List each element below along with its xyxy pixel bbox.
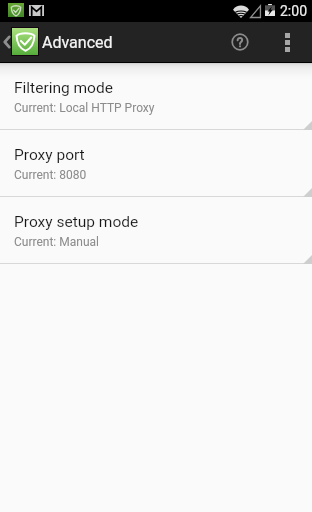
staticText: 2:00 — [280, 3, 307, 19]
button[interactable]: Help — [216, 22, 263, 62]
button[interactable]: Filtering mode — [0, 63, 312, 130]
staticText: Current: Manual — [14, 235, 99, 249]
staticText: Proxy setup mode — [14, 213, 139, 231]
staticText: Filtering mode — [14, 79, 113, 97]
button[interactable]: More options — [263, 22, 312, 62]
button[interactable]: Proxy port — [0, 130, 312, 197]
staticText: Advanced — [42, 33, 113, 52]
staticText: Current: Local HTTP Proxy — [14, 101, 155, 115]
staticText: Current: 8080 — [14, 168, 87, 182]
staticText: Proxy port — [14, 146, 85, 164]
button[interactable]: Navigate up, Advanced — [0, 22, 312, 62]
button[interactable]: Proxy setup mode — [0, 197, 312, 264]
